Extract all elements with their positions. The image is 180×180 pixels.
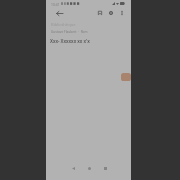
button[interactable]: Translate <box>106 8 116 18</box>
button[interactable]: Back <box>68 163 78 173</box>
button[interactable]: More options <box>117 8 127 18</box>
button[interactable]: Recents <box>100 163 110 173</box>
button[interactable]: Bookmark <box>95 8 105 18</box>
button[interactable]: Home <box>84 163 94 173</box>
button[interactable]: Compose <box>121 73 131 81</box>
staticText: 10:41 <box>51 2 60 6</box>
staticText: Xxx- Xxxxxx xx x'x <box>50 38 90 44</box>
staticText: Bibliothèque <box>51 22 76 28</box>
staticText: Gustave Flaubert · Rom <box>51 30 88 34</box>
button[interactable]: Back <box>54 8 64 18</box>
